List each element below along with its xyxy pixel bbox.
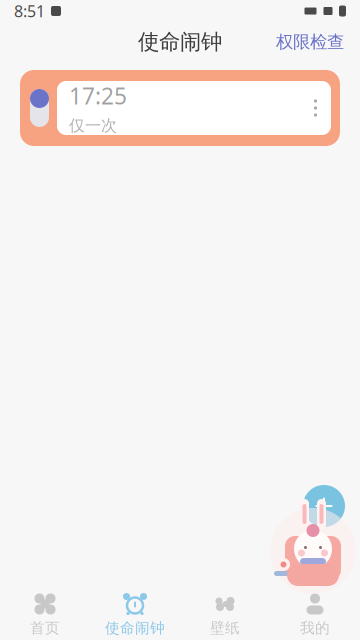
- staticText: 仅一次: [69, 116, 117, 135]
- staticText: 使命闹钟: [105, 619, 165, 637]
- button[interactable]: 首页: [0, 587, 90, 640]
- button[interactable]: 我的: [270, 587, 360, 640]
- staticText: 17:25: [69, 81, 127, 111]
- staticText: 使命闹钟: [138, 29, 222, 55]
- button[interactable]: 壁纸: [180, 587, 270, 640]
- button[interactable]: 更多选项: [304, 87, 327, 128]
- staticText: 我的: [300, 619, 330, 637]
- staticText: 首页: [30, 619, 60, 637]
- button[interactable]: 启用闹钟: [20, 79, 57, 137]
- staticText: 8:51: [14, 0, 45, 22]
- button[interactable]: 使命闹钟: [90, 587, 180, 640]
- button[interactable]: 权限检查: [266, 23, 354, 61]
- staticText: 权限检查: [276, 31, 344, 53]
- staticText: 壁纸: [210, 619, 240, 637]
- button[interactable]: 添加闹钟: [298, 480, 350, 532]
